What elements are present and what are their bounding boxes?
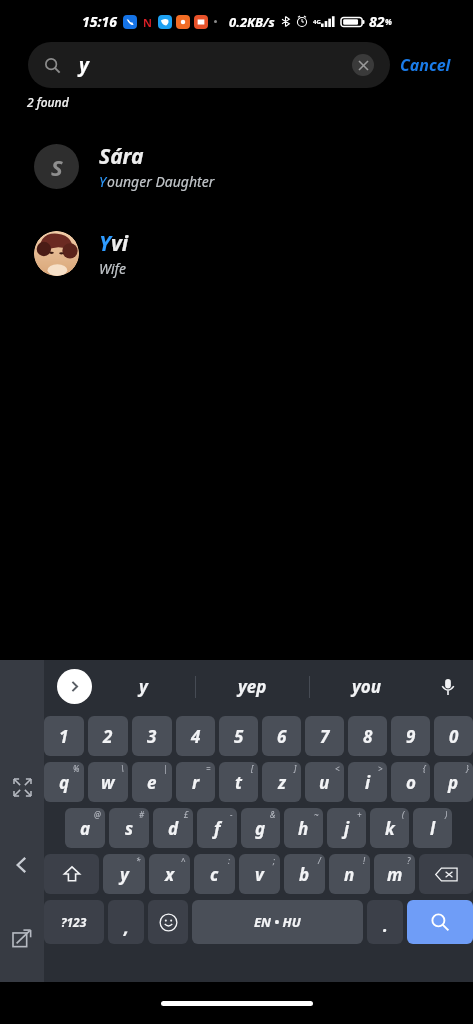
staticText: s	[125, 817, 134, 840]
button[interactable]: Emoji	[148, 900, 188, 944]
staticText: z	[278, 771, 286, 794]
staticText: ]	[294, 763, 297, 774]
staticText: &	[270, 809, 276, 820]
button[interactable]: p	[434, 762, 473, 802]
staticText: £	[184, 809, 189, 820]
button[interactable]: q	[44, 762, 84, 802]
button[interactable]: Clear search	[352, 54, 374, 76]
staticText: -	[230, 809, 233, 820]
button[interactable]: yep	[196, 660, 309, 713]
button[interactable]: Back	[5, 848, 39, 882]
staticText: 1	[59, 725, 69, 748]
staticText: u	[319, 771, 330, 794]
button[interactable]: u	[305, 762, 344, 802]
button[interactable]: S	[0, 138, 473, 195]
button[interactable]: f	[197, 808, 237, 848]
staticText: !	[363, 855, 366, 866]
button[interactable]: 9	[391, 716, 430, 756]
staticText: N	[143, 15, 152, 28]
staticText: w	[101, 771, 115, 794]
staticText: 0.2KB/s	[229, 13, 275, 31]
button[interactable]: you	[310, 660, 423, 713]
button[interactable]: n	[329, 854, 370, 894]
staticText: m	[387, 863, 403, 886]
button[interactable]: s	[109, 808, 149, 848]
staticText: y	[120, 863, 129, 886]
button[interactable]: c	[194, 854, 235, 894]
button[interactable]: i	[348, 762, 387, 802]
staticText: {	[423, 763, 426, 774]
staticText: %	[385, 16, 392, 27]
staticText: 0	[449, 725, 459, 748]
button[interactable]: Backspace	[419, 854, 473, 894]
staticText: Wife	[99, 259, 127, 278]
button[interactable]: a	[65, 808, 105, 848]
button[interactable]: j	[327, 808, 366, 848]
button[interactable]: z	[262, 762, 301, 802]
staticText: e	[147, 771, 157, 794]
button[interactable]: r	[176, 762, 215, 802]
button[interactable]: ,	[108, 900, 144, 944]
staticText: 82	[369, 12, 385, 31]
staticText: j	[344, 817, 350, 840]
button[interactable]: Shift	[44, 854, 99, 894]
button[interactable]: e	[132, 762, 172, 802]
staticText: y	[139, 675, 148, 698]
button[interactable]: g	[241, 808, 280, 848]
button[interactable]: Resize keyboard	[7, 772, 37, 802]
staticText: =	[206, 763, 211, 774]
button[interactable]: w	[88, 762, 128, 802]
button[interactable]: 4	[176, 716, 215, 756]
staticText: 4G	[313, 18, 321, 26]
button[interactable]: o	[391, 762, 430, 802]
button[interactable]: EN • HU	[192, 900, 363, 944]
staticText: +	[357, 809, 362, 820]
button[interactable]: .	[367, 900, 403, 944]
button[interactable]: More suggestions	[57, 669, 92, 704]
button[interactable]: k	[370, 808, 409, 848]
button[interactable]: y	[28, 42, 390, 88]
button[interactable]: m	[374, 854, 415, 894]
staticText: .	[383, 914, 388, 937]
button[interactable]: Y	[0, 225, 473, 282]
button[interactable]: v	[239, 854, 280, 894]
staticText: b	[299, 863, 310, 886]
button[interactable]: 2	[88, 716, 128, 756]
staticText: )	[445, 809, 448, 820]
button[interactable]: 1	[44, 716, 84, 756]
button[interactable]: h	[284, 808, 323, 848]
staticText: ?123	[61, 914, 87, 930]
button[interactable]: Search	[407, 900, 473, 944]
button[interactable]: Floating keyboard	[6, 922, 38, 954]
button[interactable]: x	[149, 854, 190, 894]
staticText: o	[406, 771, 416, 794]
button[interactable]: ?123	[44, 900, 104, 944]
staticText: l	[430, 817, 436, 840]
button[interactable]: 0	[434, 716, 473, 756]
button[interactable]: 5	[219, 716, 258, 756]
button[interactable]: 8	[348, 716, 387, 756]
staticText: 4	[191, 725, 201, 748]
staticText: yep	[238, 675, 267, 698]
staticText: ~	[314, 809, 319, 820]
button[interactable]: 6	[262, 716, 301, 756]
staticText: r	[192, 771, 200, 794]
button[interactable]: t	[219, 762, 258, 802]
button[interactable]: 7	[305, 716, 344, 756]
button[interactable]: Voice input	[423, 660, 473, 713]
button[interactable]: d	[153, 808, 193, 848]
staticText: you	[352, 675, 382, 698]
button[interactable]: y	[92, 660, 195, 713]
staticText: Y	[99, 172, 107, 191]
button[interactable]: b	[284, 854, 325, 894]
staticText: #	[139, 809, 145, 820]
button[interactable]: Cancel	[390, 46, 461, 84]
staticText: d	[168, 817, 179, 840]
staticText: 8	[363, 725, 373, 748]
button[interactable]: 3	[132, 716, 172, 756]
staticText: <	[335, 763, 340, 774]
staticText: Cancel	[400, 54, 451, 76]
button[interactable]: l	[413, 808, 452, 848]
button[interactable]: y	[103, 854, 145, 894]
staticText: EN • HU	[254, 913, 301, 931]
